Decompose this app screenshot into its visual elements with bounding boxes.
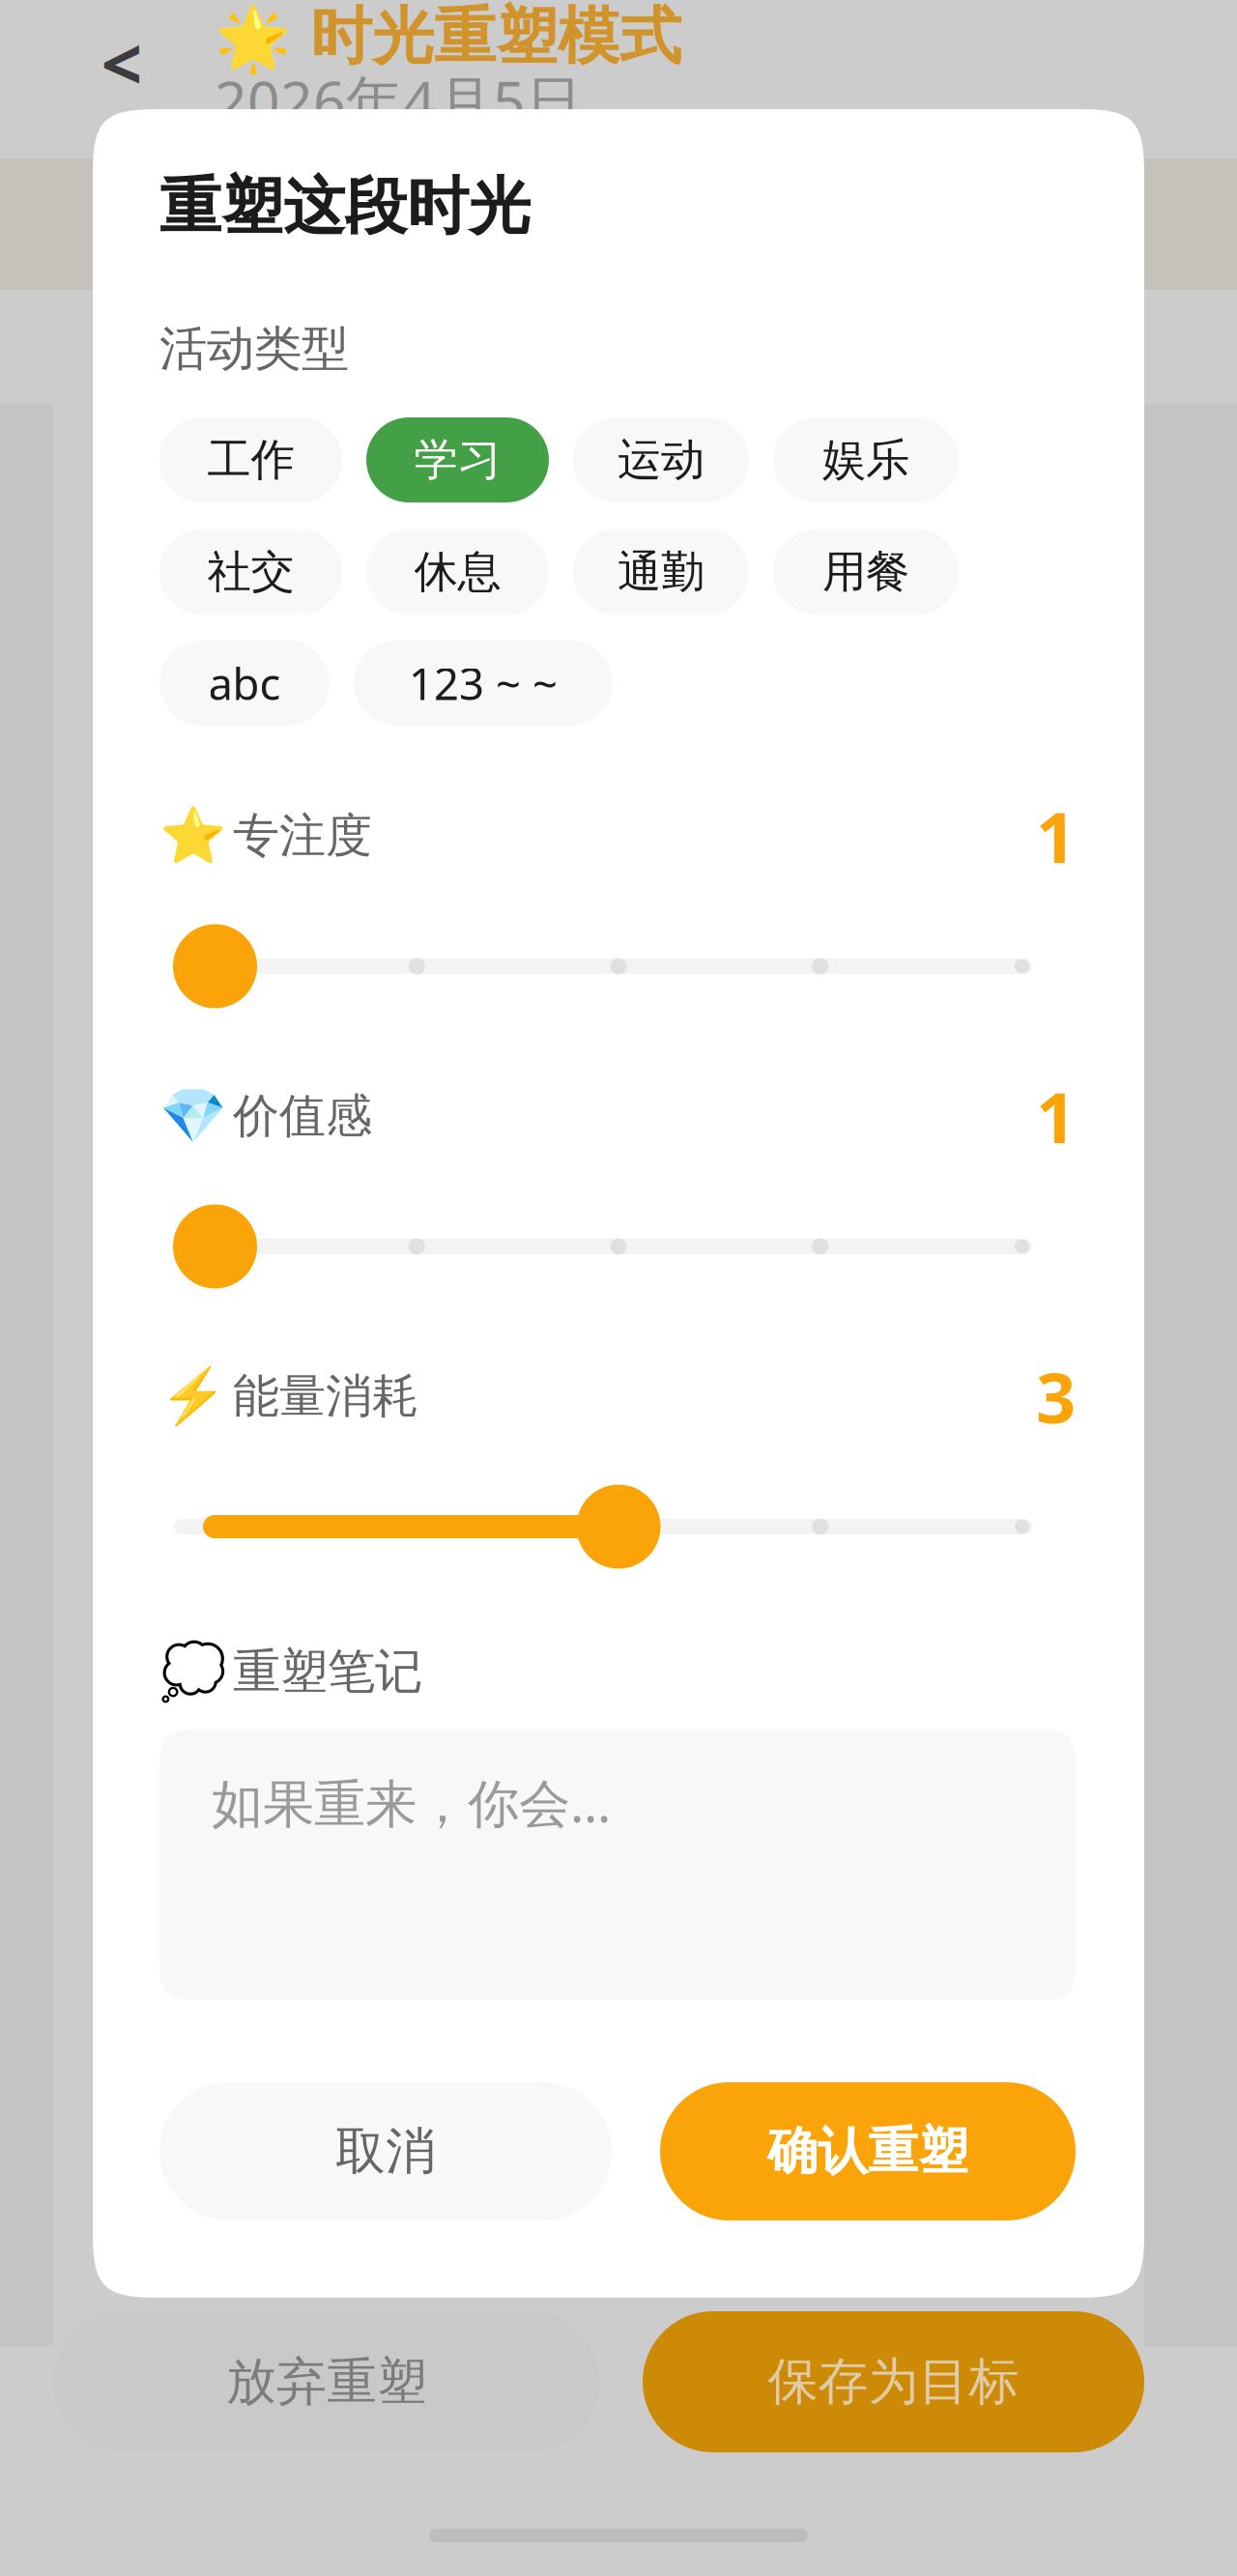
- button[interactable]: 休息: [366, 530, 549, 615]
- staticText: 确认重塑: [767, 2121, 968, 2182]
- button[interactable]: 确认重塑: [660, 2082, 1076, 2220]
- staticText: ⭐️: [159, 805, 227, 867]
- staticText: 💎: [159, 1085, 227, 1147]
- staticText: 放弃重塑: [226, 2351, 427, 2413]
- button[interactable]: 用餐: [773, 530, 959, 615]
- staticText: 💭: [159, 1641, 227, 1703]
- button[interactable]: 通勤: [573, 530, 749, 615]
- button[interactable]: 工作: [159, 417, 342, 502]
- staticText: <: [101, 15, 143, 111]
- staticText: 娱乐: [822, 433, 909, 487]
- button[interactable]: abc: [159, 641, 330, 726]
- button[interactable]: 保存为目标: [643, 2311, 1144, 2452]
- button[interactable]: Back: [93, 29, 151, 97]
- staticText: 1: [1036, 790, 1076, 882]
- button[interactable]: 社交: [159, 530, 342, 615]
- staticText: 休息: [414, 545, 501, 599]
- staticText: 如果重来，你会...: [212, 1768, 611, 1837]
- staticText: 社交: [207, 545, 294, 599]
- staticText: 工作: [207, 433, 294, 487]
- staticText: 3: [1036, 1350, 1076, 1442]
- staticText: 取消: [335, 2121, 436, 2182]
- button[interactable]: 放弃重塑: [53, 2311, 600, 2452]
- staticText: 专注度: [233, 807, 372, 864]
- button[interactable]: 学习: [366, 417, 549, 502]
- staticText: 活动类型: [159, 320, 349, 378]
- staticText: 能量消耗: [233, 1368, 418, 1425]
- staticText: 用餐: [822, 545, 909, 599]
- button[interactable]: 123 ~ ~: [354, 641, 613, 726]
- staticText: 运动: [618, 433, 705, 487]
- staticText: 学习: [414, 433, 501, 487]
- staticText: 1: [1036, 1070, 1076, 1162]
- staticText: 保存为目标: [768, 2351, 1019, 2413]
- button[interactable]: 取消: [159, 2082, 612, 2220]
- staticText: 价值感: [233, 1088, 372, 1145]
- staticText: abc: [208, 654, 281, 712]
- staticText: 🌟 时光重塑模式: [215, 0, 681, 75]
- staticText: ⚡: [159, 1365, 227, 1427]
- staticText: 123 ~ ~: [409, 654, 558, 712]
- staticText: 2026年4月5日: [215, 63, 583, 138]
- staticText: 重塑这段时光: [159, 169, 531, 245]
- staticText: 通勤: [618, 545, 705, 599]
- button[interactable]: 娱乐: [773, 417, 959, 502]
- staticText: 重塑笔记: [233, 1642, 422, 1701]
- button[interactable]: 运动: [573, 417, 749, 502]
